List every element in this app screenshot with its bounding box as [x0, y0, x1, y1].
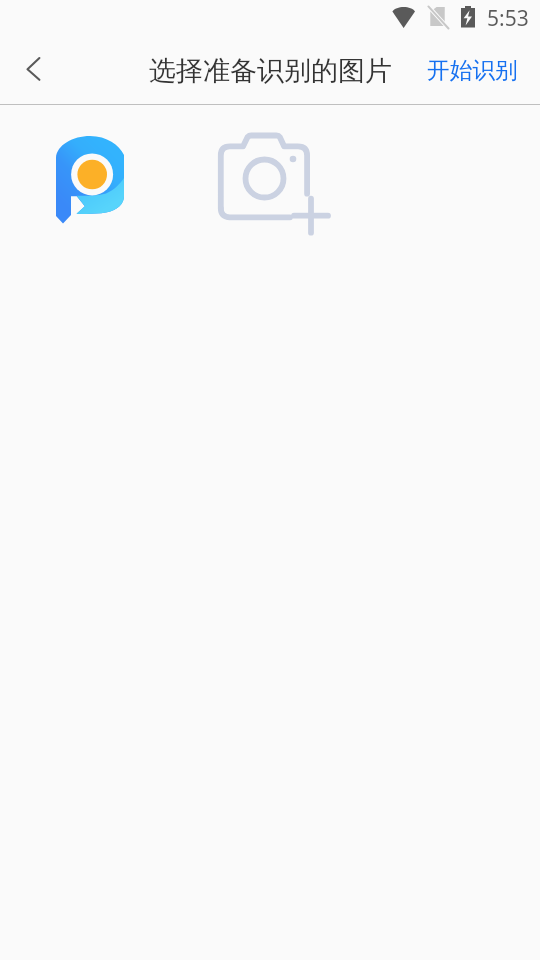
staticText: 开始识别	[427, 56, 518, 85]
button[interactable]: Back	[9, 45, 57, 93]
staticText: 选择准备识别的图片	[149, 54, 392, 88]
button[interactable]: 开始识别	[416, 45, 529, 95]
button[interactable]: Add photo	[216, 128, 334, 238]
staticText: 5:53	[487, 4, 529, 33]
